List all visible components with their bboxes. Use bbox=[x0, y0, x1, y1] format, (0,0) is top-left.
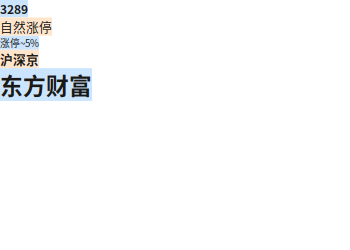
staticText: 3289 bbox=[0, 0, 28, 17]
staticText: 自然涨停 bbox=[0, 17, 52, 36]
staticText: 沪深京 bbox=[0, 50, 39, 68]
staticText: 涨停~5% bbox=[0, 36, 39, 50]
staticText: 东方财富 bbox=[0, 68, 92, 101]
